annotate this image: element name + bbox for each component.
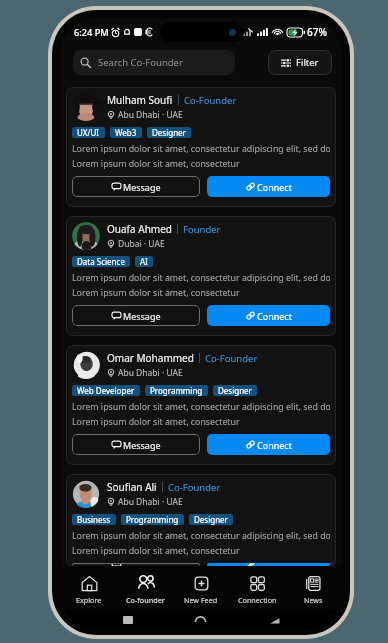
button[interactable]: Omar Mohammed (66, 345, 336, 465)
staticText: Lorem ipsum dolor sit amet, consectetur … (72, 143, 330, 155)
staticText: Web3 (115, 127, 137, 138)
button[interactable]: Soufian Ali (66, 474, 336, 567)
staticText: 6:24 PM (74, 26, 109, 39)
staticText: News (304, 595, 323, 605)
button[interactable]: Message (72, 305, 200, 326)
staticText: Data Science (77, 256, 125, 267)
staticText: Explore (76, 595, 102, 605)
staticText: Co-Founder (184, 94, 237, 107)
staticText: UX/UI (77, 127, 100, 138)
button[interactable]: Connect (207, 563, 330, 567)
button[interactable]: Co-founder (117, 566, 173, 609)
staticText: Message (123, 563, 161, 567)
button[interactable]: Filter (268, 50, 332, 75)
staticText: Designer (152, 127, 186, 138)
staticText: AI (140, 256, 148, 267)
staticText: Lorem ipsum dolor sit amet, consectetur … (72, 530, 330, 542)
staticText: Co-Founder (205, 352, 258, 365)
staticText: Abu Dhabi · UAE (118, 109, 183, 121)
staticText: Programming (150, 385, 203, 396)
button[interactable]: Message (72, 176, 200, 197)
staticText: Lorem ipsum dolor sit amet, consectetur (72, 416, 240, 428)
staticText: Co-Founder (168, 481, 221, 494)
staticText: Soufian Ali (107, 480, 157, 494)
staticText: Search Co-Founder (98, 56, 183, 69)
other: Home (194, 614, 207, 627)
staticText: Connection (238, 595, 277, 605)
staticText: Omar Mohammed (107, 351, 194, 365)
staticText: 67% (307, 25, 327, 39)
button[interactable]: Connect (207, 176, 330, 197)
staticText: Web Developer (77, 385, 135, 396)
staticText: Connect (257, 439, 292, 451)
staticText: Mulham Soufi (107, 93, 173, 107)
staticText: Filter (296, 56, 319, 69)
staticText: Abu Dhabi · UAE (118, 496, 183, 508)
button[interactable]: Message (72, 434, 200, 455)
staticText: Designer (218, 385, 252, 396)
button[interactable]: Mulham Soufi (66, 87, 336, 207)
staticText: Abu Dhabi · UAE (118, 367, 183, 379)
staticText: Business (77, 514, 111, 525)
staticText: Lorem ipsum dolor sit amet, consectetur … (72, 401, 330, 413)
staticText: Lorem ipsum dolor sit amet, consectetur (72, 545, 240, 557)
staticText: Programming (126, 514, 179, 525)
button[interactable]: Connection (229, 566, 285, 609)
staticText: Co-founder (126, 595, 165, 605)
staticText: Lorem ipsum dolor sit amet, consectetur (72, 158, 240, 170)
staticText: Ouafa Ahmed (107, 222, 172, 236)
button[interactable]: Connect (207, 434, 330, 455)
button[interactable]: Connect (207, 305, 330, 326)
staticText: Lorem ipsum dolor sit amet, consectetur … (72, 272, 330, 284)
button[interactable]: Ouafa Ahmed (66, 216, 336, 336)
staticText: Connect (257, 563, 292, 567)
staticText: Message (123, 439, 161, 451)
button[interactable]: New Feed (173, 566, 229, 609)
button[interactable]: Explore (61, 566, 117, 609)
staticText: Designer (194, 514, 228, 525)
staticText: Connect (257, 181, 292, 193)
staticText: Message (123, 181, 161, 193)
staticText: New Feed (184, 595, 218, 605)
staticText: Founder (183, 223, 221, 236)
button[interactable]: Search Co-Founder (73, 50, 235, 75)
staticText: Dubai · UAE (118, 238, 165, 250)
other: Back (269, 615, 280, 626)
staticText: Lorem ipsum dolor sit amet, consectetur (72, 287, 240, 299)
staticText: Connect (257, 310, 292, 322)
button[interactable]: Message (72, 563, 200, 567)
staticText: Message (123, 310, 161, 322)
other: Recents (123, 616, 133, 624)
button[interactable]: News (285, 566, 341, 609)
